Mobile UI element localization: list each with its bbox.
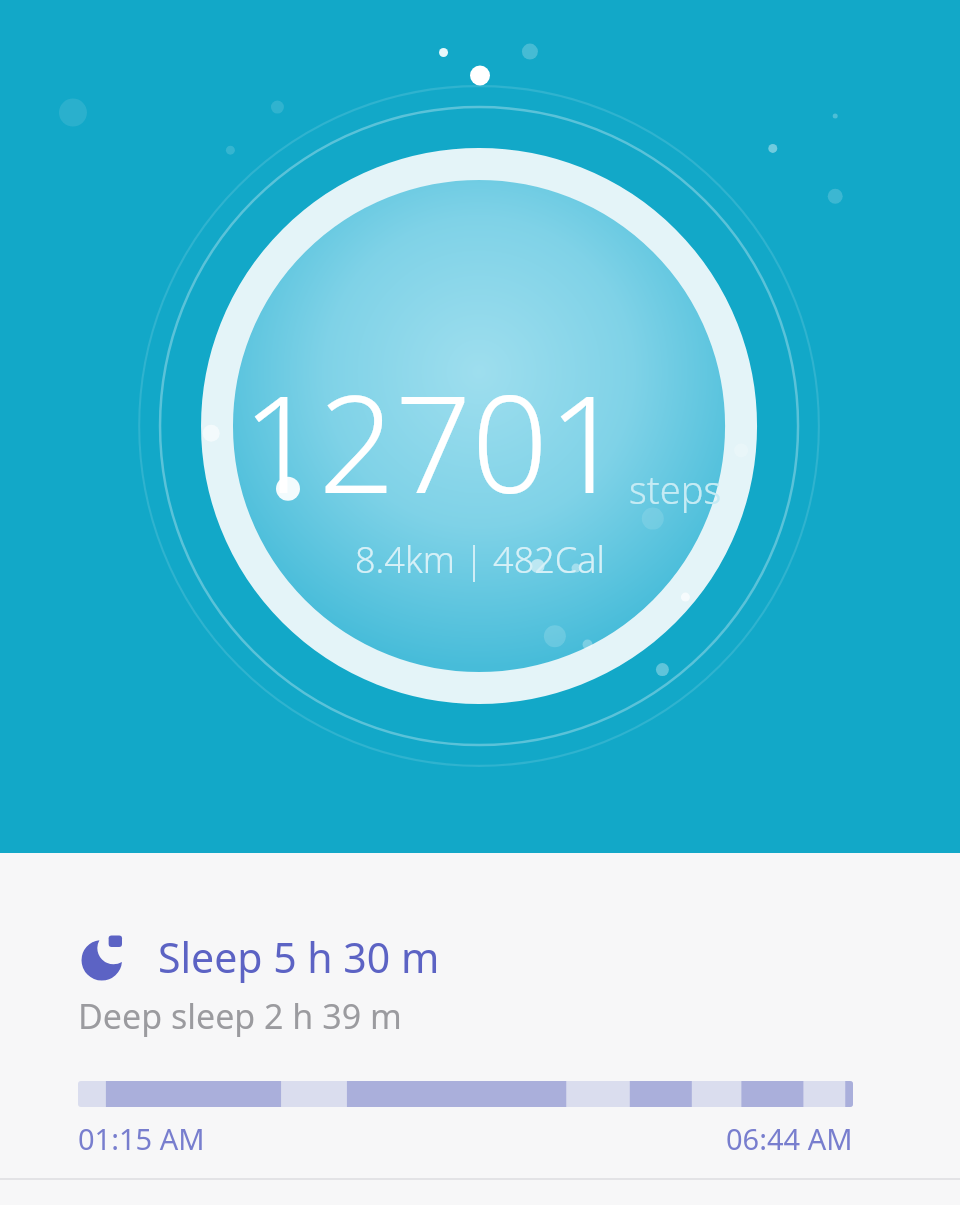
staticText: steps [629, 463, 722, 515]
staticText: Deep sleep 2 h 39 m [78, 993, 402, 1039]
button[interactable]: 12701 [0, 0, 960, 853]
staticText: 8.4km | 482Cal [355, 535, 605, 584]
staticText: 12701 [242, 350, 625, 533]
staticText: 01:15 AM [78, 1119, 205, 1158]
other: Sleep details [78, 930, 132, 984]
button[interactable]: Sleep details [0, 853, 960, 1158]
staticText: Sleep 5 h 30 m [158, 929, 440, 985]
staticText: 06:44 AM [726, 1119, 853, 1158]
